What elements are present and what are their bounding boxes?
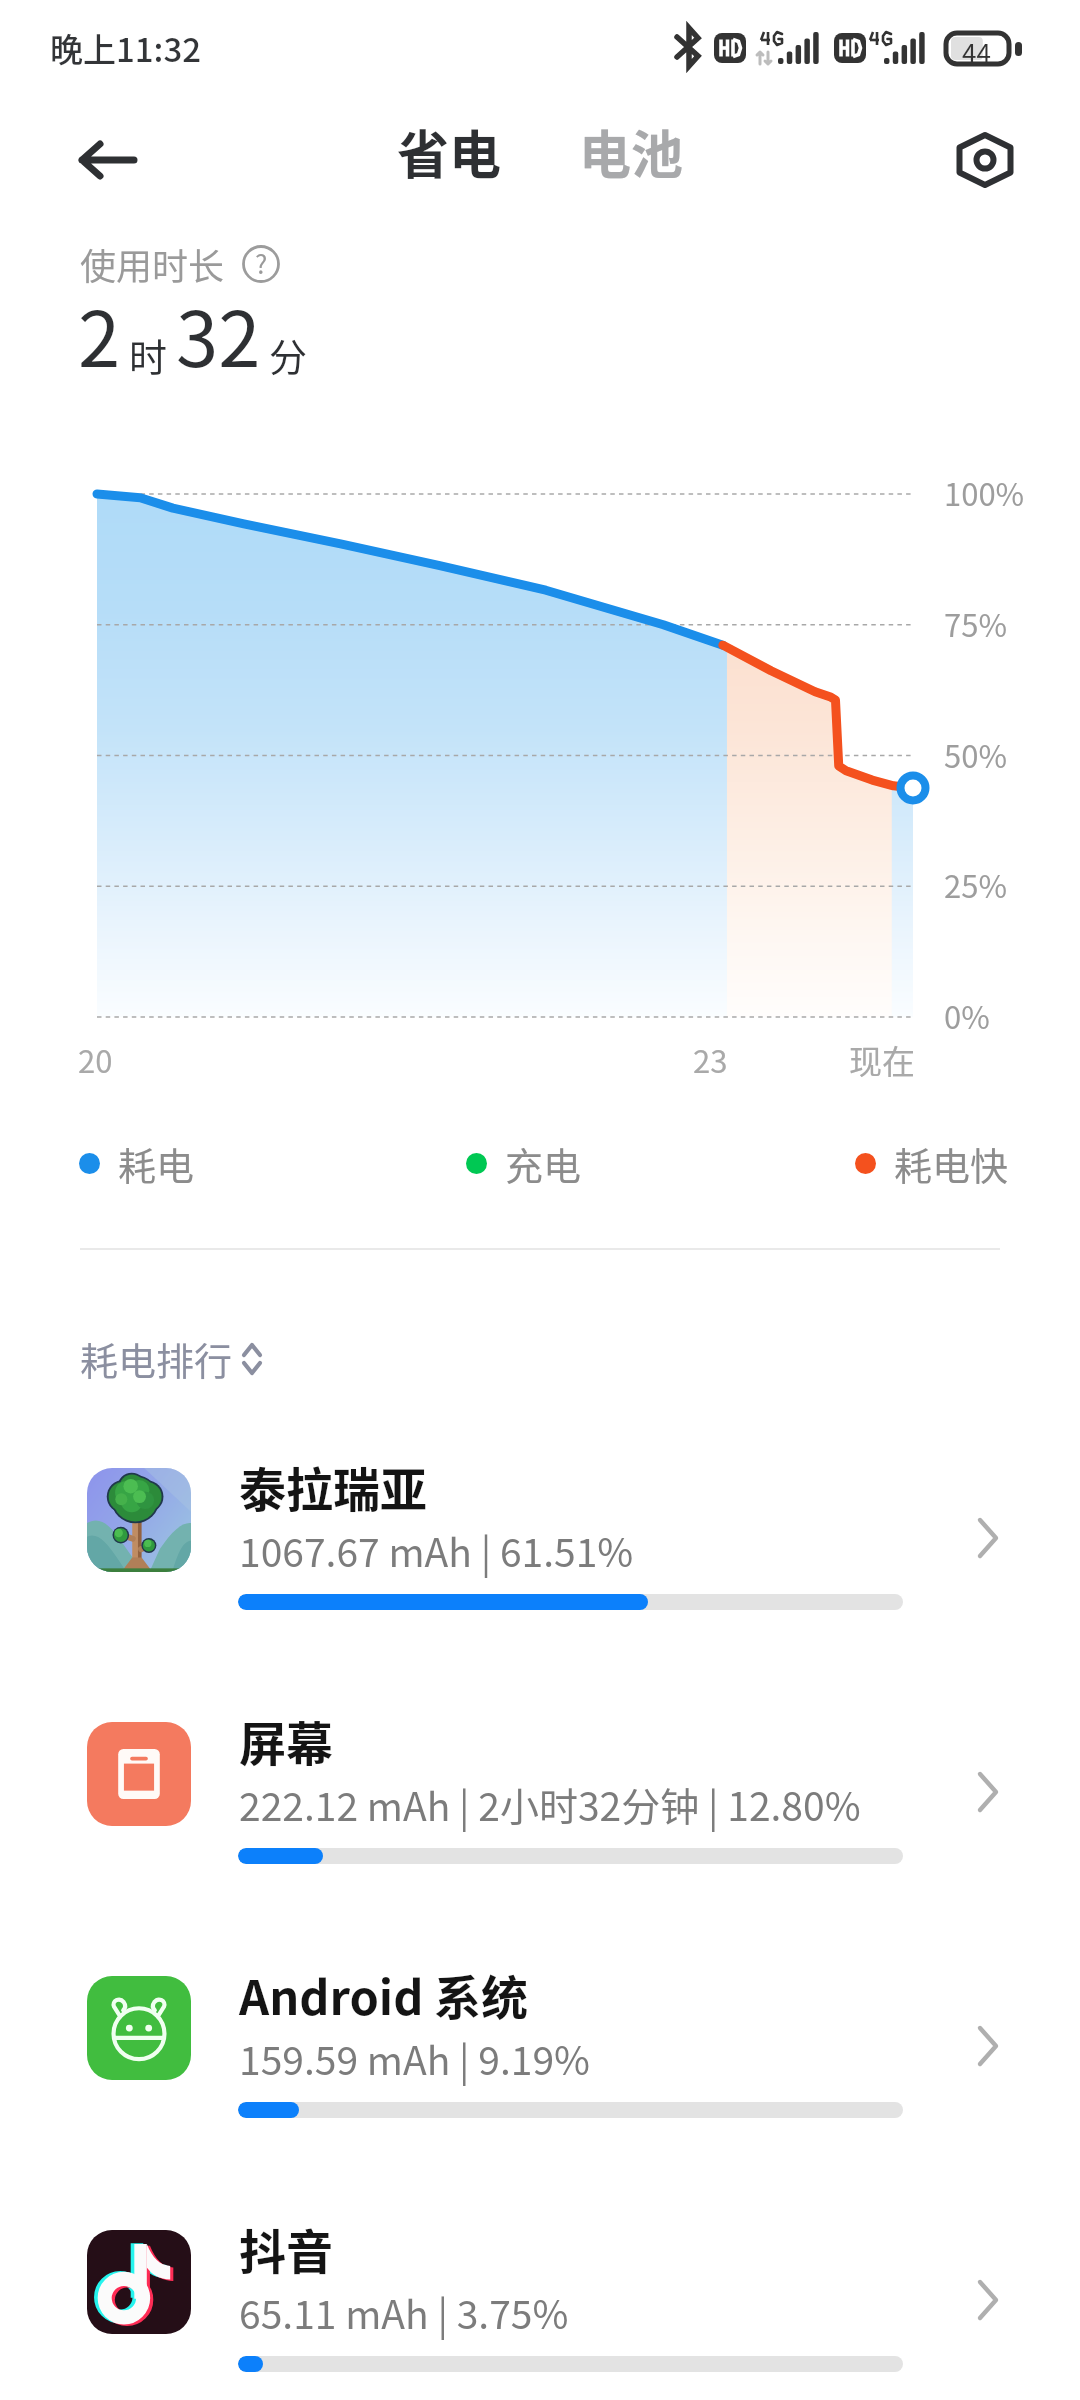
button[interactable]: 返回 (56, 108, 160, 212)
button[interactable]: 充电 (466, 1136, 582, 1191)
staticText: 23 (693, 1037, 728, 1082)
button[interactable]: 设置 (935, 110, 1035, 210)
staticText: 32 (176, 279, 261, 389)
staticText: 屏幕 (239, 1706, 333, 1774)
staticText: 1067.67 mAh | 61.51% (239, 1522, 634, 1578)
staticText: 50% (944, 732, 1007, 777)
staticText: 222.12 mAh | 2小时32分钟 | 12.80% (239, 1776, 861, 1832)
button[interactable]: 耗电 (79, 1136, 195, 1191)
staticText: 20 (78, 1037, 113, 1082)
staticText: 100% (944, 470, 1025, 515)
staticText: 泰拉瑞亚 (239, 1452, 427, 1520)
staticText: 0% (944, 993, 990, 1038)
button[interactable]: 省电 (379, 106, 520, 197)
button[interactable]: 泰拉瑞亚 (0, 1450, 1080, 1690)
staticText: 44 (962, 33, 991, 71)
staticText: 抖音 (239, 2214, 333, 2282)
staticText: 159.59 mAh | 9.19% (239, 2030, 591, 2086)
button[interactable]: 耗电快 (855, 1136, 1009, 1191)
button[interactable]: 说明 (241, 244, 281, 284)
staticText: 耗电排行 (80, 1331, 233, 1386)
staticText: 充电 (505, 1136, 582, 1191)
staticText: 分 (269, 327, 308, 382)
staticText: 时 (129, 327, 168, 382)
staticText: 使用时长 (80, 238, 225, 290)
staticText: 耗电快 (894, 1136, 1009, 1191)
button[interactable]: Android 系统 (0, 1958, 1080, 2198)
button[interactable]: 抖音 (0, 2212, 1080, 2400)
staticText: 晚上11:32 (50, 24, 202, 72)
staticText: 电池 (579, 114, 684, 189)
staticText: Android 系统 (239, 1960, 529, 2028)
staticText: 65.11 mAh | 3.75% (239, 2284, 569, 2340)
staticText: 省电 (397, 114, 502, 189)
staticText: 75% (944, 601, 1007, 646)
staticText: 2 (78, 279, 121, 389)
staticText: 耗电 (118, 1136, 195, 1191)
button[interactable]: 电池 (561, 106, 702, 197)
staticText: 现在 (849, 1036, 915, 1084)
button[interactable]: 耗电排行 (80, 1331, 267, 1386)
staticText: ? (255, 244, 268, 282)
staticText: 25% (944, 862, 1007, 907)
button[interactable]: 屏幕 (0, 1704, 1080, 1944)
